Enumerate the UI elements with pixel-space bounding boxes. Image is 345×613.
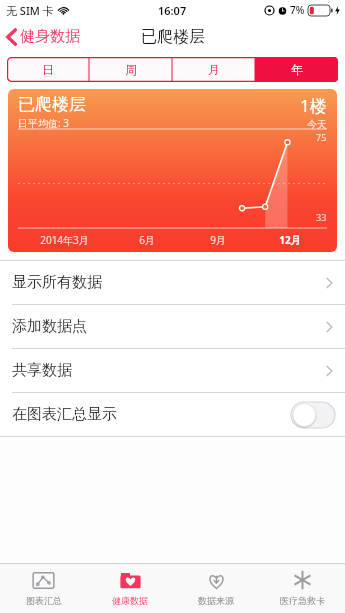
staticText: 已爬楼层 [141, 27, 205, 47]
staticText: 75 [316, 131, 327, 143]
button[interactable]: 显示所有数据 [0, 261, 345, 304]
button[interactable]: 已爬楼层 [8, 89, 337, 252]
staticText: 周 [125, 62, 137, 77]
staticText: 月 [208, 62, 220, 77]
staticText: 健康数据 [112, 595, 148, 606]
staticText: 2014年3月 [40, 233, 89, 247]
button[interactable]: 健康数据 [87, 564, 173, 613]
staticText: 12月 [279, 233, 301, 247]
staticText: 添加数据点 [12, 317, 87, 336]
staticText: 健身数据 [20, 27, 80, 46]
staticText: 年 [291, 62, 303, 77]
staticText: 7% [290, 3, 305, 17]
staticText: 共享数据 [12, 361, 72, 380]
button[interactable]: 医疗急救卡 [259, 564, 345, 613]
staticText: 无 SIM 卡 [6, 3, 54, 18]
staticText: 今天 [307, 118, 327, 131]
button[interactable]: 在图表汇总显示开关 [291, 402, 335, 428]
button[interactable]: 添加数据点 [0, 305, 345, 348]
staticText: 1楼 [300, 94, 327, 117]
staticText: 已爬楼层 [18, 94, 86, 115]
staticText: 日 [42, 62, 54, 77]
staticText: 在图表汇总显示 [12, 405, 117, 424]
staticText: 33 [316, 211, 327, 223]
button[interactable]: 健身数据 [0, 23, 88, 50]
staticText: 数据来源 [198, 595, 234, 606]
button[interactable]: 周 [89, 57, 172, 82]
staticText: 日平均值: 3 [18, 116, 69, 130]
staticText: 医疗急救卡 [280, 595, 325, 606]
button[interactable]: 图表汇总 [0, 564, 87, 613]
staticText: 显示所有数据 [12, 273, 102, 292]
button[interactable]: 年 [255, 57, 338, 82]
button[interactable]: 共享数据 [0, 349, 345, 392]
button[interactable]: 数据来源 [173, 564, 259, 613]
staticText: 9月 [210, 233, 226, 247]
staticText: 6月 [139, 233, 155, 247]
button[interactable]: 月 [172, 57, 255, 82]
button[interactable]: 日 [7, 57, 89, 82]
button[interactable]: 在图表汇总显示 [0, 393, 345, 436]
staticText: 图表汇总 [26, 595, 62, 606]
staticText: 16:07 [158, 3, 187, 18]
